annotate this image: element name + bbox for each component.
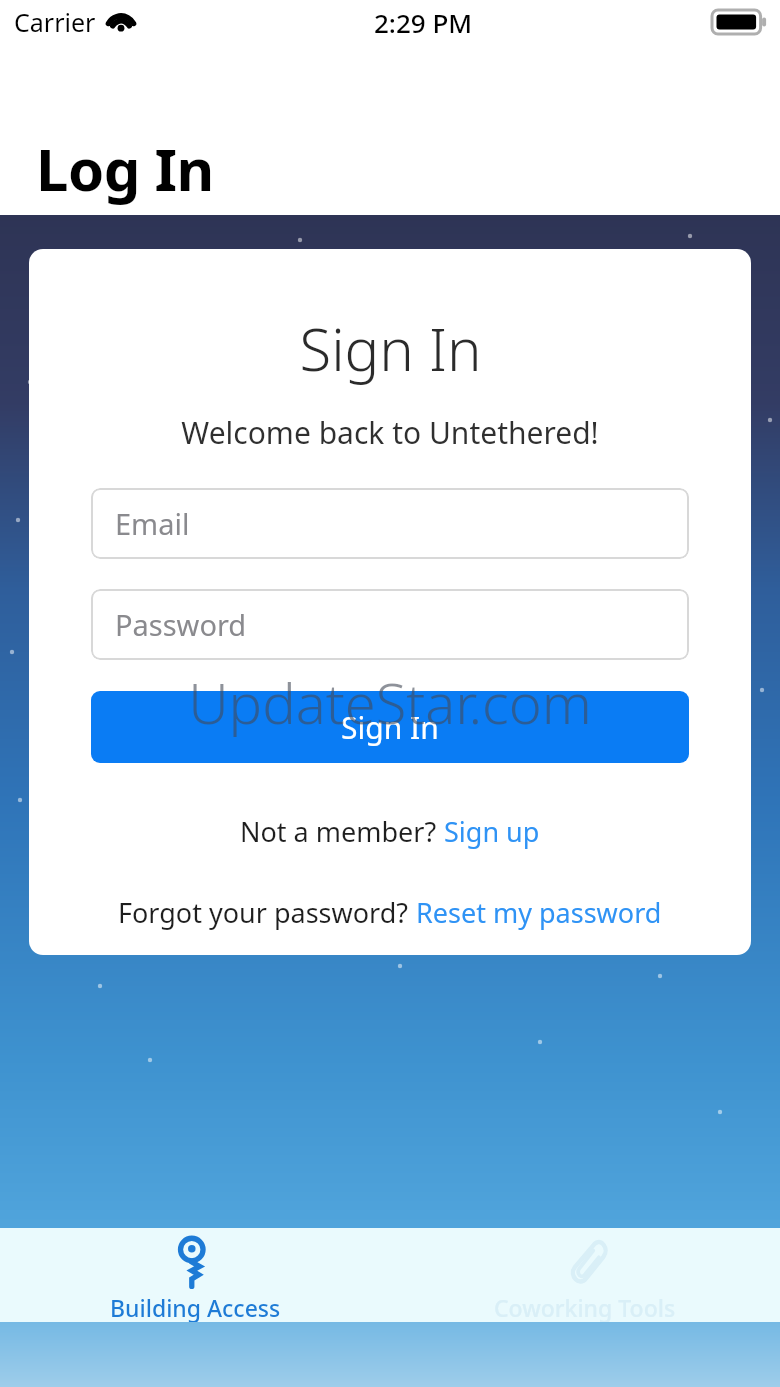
staticText: Log In xyxy=(36,129,214,208)
staticText: Sign In xyxy=(341,707,439,748)
staticText: Reset my password xyxy=(416,894,662,931)
staticText: Building Access xyxy=(110,1292,281,1322)
button[interactable]: Email xyxy=(91,488,689,559)
staticText: Forgot your password? xyxy=(118,894,416,931)
staticText: Not a member? xyxy=(240,813,444,850)
staticText: Sign In xyxy=(299,309,482,388)
staticText: Welcome back to Untethered! xyxy=(181,412,599,453)
staticText: UpdateStar.com xyxy=(188,664,592,740)
button[interactable]: Coworking Tools xyxy=(390,1228,780,1322)
staticText: 2:29 PM xyxy=(374,5,473,40)
staticText: Email xyxy=(115,504,190,543)
button[interactable]: Sign up xyxy=(444,813,540,850)
staticText: Carrier xyxy=(14,5,96,39)
button[interactable]: Sign In xyxy=(91,691,689,763)
staticText: Sign up xyxy=(444,813,540,850)
button[interactable]: Reset my password xyxy=(416,894,662,931)
staticText: Password xyxy=(115,605,247,644)
button[interactable]: Password xyxy=(91,589,689,660)
button[interactable]: Building Access xyxy=(0,1228,390,1322)
staticText: Coworking Tools xyxy=(494,1292,676,1322)
